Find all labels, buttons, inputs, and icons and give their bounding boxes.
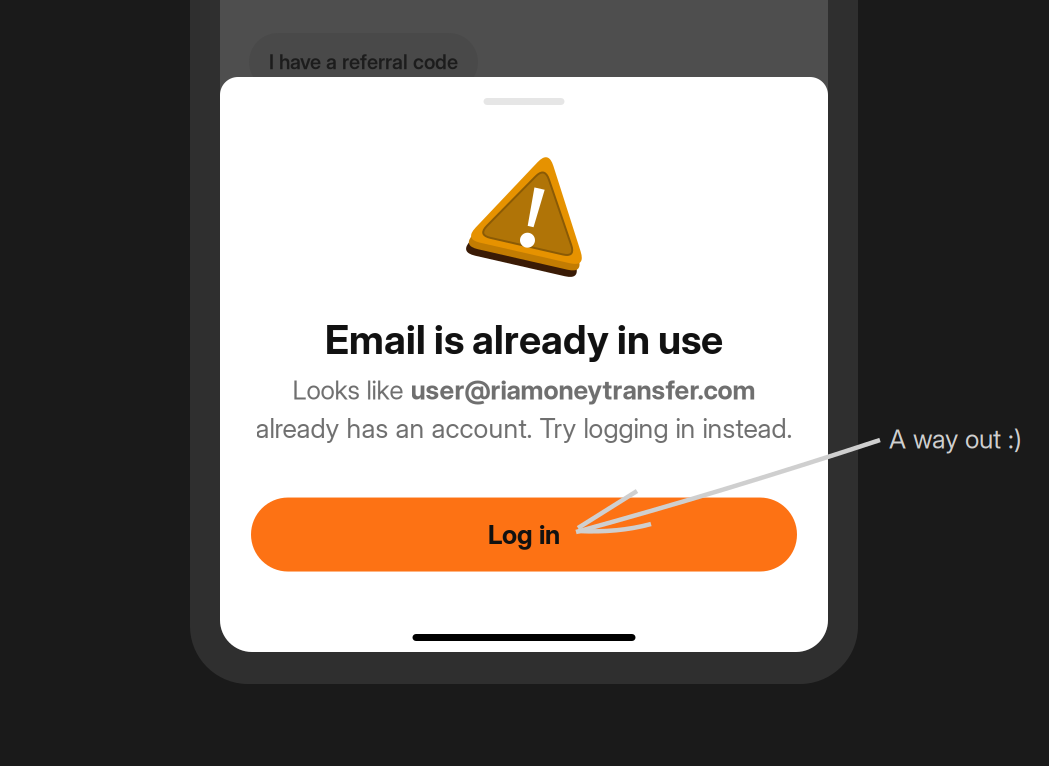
button[interactable]: I have a referral code xyxy=(249,33,478,91)
staticText: A way out :) xyxy=(889,423,1022,455)
staticText: I have a referral code xyxy=(269,50,458,74)
button[interactable]: Log in xyxy=(251,497,797,571)
staticText: Email is already in use xyxy=(325,316,723,364)
staticText: Looks like user@riamoneytransfer.com xyxy=(292,375,755,405)
staticText: already has an account. Try logging in i… xyxy=(255,412,792,445)
staticText: Log in xyxy=(488,519,560,550)
